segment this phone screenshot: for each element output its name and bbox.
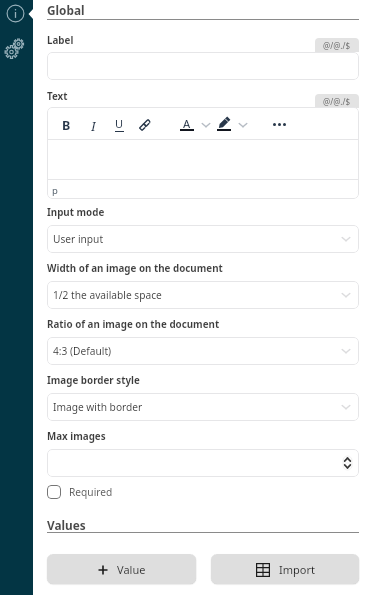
button[interactable]: 1/2 the available space (47, 281, 359, 309)
staticText: 4:3 (Default) (53, 344, 112, 358)
button[interactable]: Settings (3, 36, 25, 58)
staticText: Global (47, 2, 85, 18)
staticText: Text (47, 90, 68, 103)
button[interactable]: Italic (85, 117, 101, 133)
button[interactable]: Required (47, 485, 113, 499)
staticText: Value (117, 562, 146, 577)
button[interactable]: Highlight options (236, 118, 250, 132)
staticText: Import (279, 562, 315, 577)
staticText: @/@./$ (323, 40, 351, 51)
button[interactable]: Link (137, 117, 153, 133)
button[interactable]: User input (47, 225, 359, 253)
button[interactable]: Info (6, 4, 25, 23)
staticText: Ratio of an image on the document (47, 318, 220, 331)
button[interactable]: Bold (58, 117, 74, 133)
button[interactable]: Highlight color (215, 114, 233, 133)
staticText: Image with border (53, 400, 143, 414)
staticText: 1/2 the available space (53, 288, 162, 302)
staticText: p (52, 184, 58, 197)
staticText: Values (47, 517, 86, 533)
button[interactable] (47, 52, 359, 80)
staticText: @/@./$ (323, 96, 351, 107)
staticText: Image border style (47, 374, 140, 387)
button[interactable]: Text color (178, 114, 196, 133)
button[interactable]: Text color options (199, 118, 213, 132)
staticText: Max images (47, 430, 106, 443)
staticText: U (115, 116, 124, 131)
staticText: B (62, 117, 71, 133)
button[interactable]: More options (269, 118, 289, 130)
button[interactable]: Import (211, 554, 359, 584)
staticText: A (183, 116, 191, 131)
staticText: Label (47, 34, 74, 47)
button[interactable]: 4:3 (Default) (47, 337, 359, 365)
button[interactable]: Increase or decrease (343, 456, 352, 470)
button[interactable]: Image with border (47, 393, 359, 421)
button[interactable]: Value (47, 554, 196, 584)
staticText: User input (53, 232, 104, 246)
staticText: Input mode (47, 206, 105, 219)
staticText: Width of an image on the document (47, 262, 223, 275)
button[interactable]: Underline (111, 116, 127, 132)
button[interactable]: Increase or decrease (47, 449, 359, 477)
staticText: Required (69, 485, 113, 499)
staticText: I (91, 117, 96, 133)
